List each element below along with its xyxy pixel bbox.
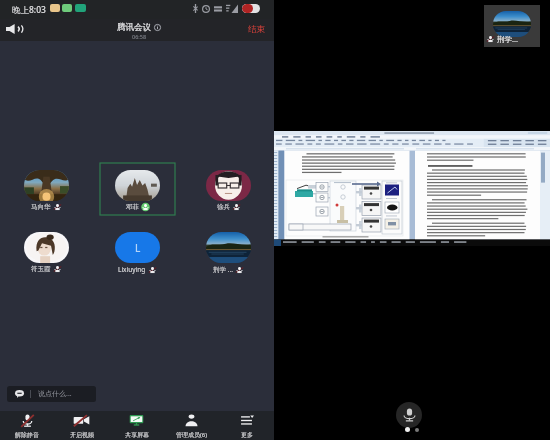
button[interactable]: 结束 <box>239 21 274 38</box>
button[interactable]: 荆学... <box>484 5 540 47</box>
staticText: 说点什么... <box>38 389 72 399</box>
staticText: 徐兵 <box>217 203 230 211</box>
button[interactable]: 邓菲 <box>100 163 175 215</box>
button[interactable]: 马向华 <box>9 163 84 215</box>
button[interactable]: 符玉霞 <box>9 225 84 277</box>
button[interactable]: 更多 <box>219 411 274 440</box>
staticText: 共享屏幕 <box>125 431 149 439</box>
staticText: 荆学 ... <box>213 265 233 274</box>
staticText: 符玉霞 <box>31 265 51 273</box>
staticText: L <box>135 241 141 255</box>
button[interactable]: 开启视频 <box>54 411 109 440</box>
button[interactable]: 徐兵 <box>191 163 266 215</box>
button[interactable]: Mute microphone <box>396 402 422 428</box>
staticText: 腾讯会议 <box>117 22 151 33</box>
staticText: 马向华 <box>31 203 51 211</box>
button[interactable]: L <box>100 225 175 277</box>
button[interactable]: 解除静音 <box>0 411 54 440</box>
staticText: 晚上8:03 <box>12 4 46 16</box>
button[interactable]: 荆学 ... <box>191 225 266 277</box>
staticText: 解除静音 <box>15 431 39 439</box>
staticText: 邓菲 <box>126 203 139 211</box>
staticText: 开启视频 <box>70 431 94 439</box>
staticText: 06:58 <box>132 33 147 40</box>
button[interactable]: 管理成员(6) <box>164 411 219 440</box>
button[interactable]: Speaker <box>4 22 24 35</box>
staticText: Lixiuying <box>118 265 146 274</box>
staticText: 管理成员(6) <box>176 431 208 439</box>
button[interactable]: 说点什么... <box>7 386 96 402</box>
button[interactable]: 共享屏幕 <box>109 411 164 440</box>
staticText: 荆学... <box>497 34 519 44</box>
staticText: 更多 <box>241 431 253 439</box>
staticText: 结束 <box>248 24 265 35</box>
